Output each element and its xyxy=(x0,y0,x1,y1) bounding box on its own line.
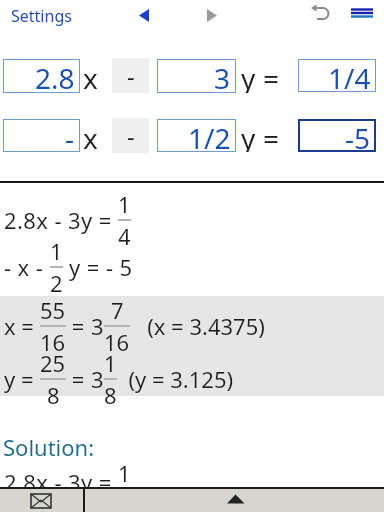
staticText: 1 xyxy=(50,236,63,266)
staticText: 3 xyxy=(91,311,104,341)
button[interactable] xyxy=(308,2,334,26)
staticText: Settings xyxy=(11,5,72,27)
staticText: y = xyxy=(4,364,40,394)
staticText: - xyxy=(65,119,75,152)
staticText: - xyxy=(127,119,135,152)
button[interactable]: - xyxy=(3,119,80,152)
staticText: 3 xyxy=(91,364,104,394)
staticText: 2.8x - 3y = xyxy=(4,467,118,497)
staticText: - x - xyxy=(4,252,50,282)
staticText: - xyxy=(127,59,135,92)
button[interactable]: -5 xyxy=(298,119,376,152)
staticText: 1 xyxy=(118,458,131,488)
button[interactable]: - xyxy=(112,58,149,93)
staticText: = xyxy=(66,311,91,341)
staticText: 1 xyxy=(118,189,131,219)
staticText: 16 xyxy=(40,327,66,357)
staticText: 1 xyxy=(104,348,117,378)
staticText: x = xyxy=(4,311,40,341)
button[interactable]: 2.8 xyxy=(3,59,80,93)
staticText: 3 xyxy=(214,59,231,93)
button[interactable]: - xyxy=(112,118,149,153)
button[interactable] xyxy=(132,6,156,26)
button[interactable]: Settings xyxy=(6,2,76,30)
staticText: 8 xyxy=(104,380,117,410)
button[interactable]: 1/4 xyxy=(298,59,376,92)
button[interactable] xyxy=(200,6,224,26)
staticText: y = - 5 xyxy=(63,252,133,282)
staticText: (x = 3.4375) xyxy=(130,311,265,341)
staticText: 2.8x - 3y = xyxy=(4,205,118,235)
staticText: = xyxy=(263,59,280,93)
staticText: x xyxy=(83,59,98,93)
staticText: = xyxy=(263,119,280,152)
staticText: x xyxy=(83,119,98,152)
staticText: -5 xyxy=(345,119,371,152)
staticText: 25 xyxy=(40,348,66,378)
staticText: 16 xyxy=(104,327,130,357)
button[interactable] xyxy=(25,490,57,512)
staticText: 8 xyxy=(47,380,60,410)
staticText: y xyxy=(241,119,256,152)
staticText: 1/2 xyxy=(188,119,231,152)
button[interactable]: 1/2 xyxy=(157,119,236,152)
button[interactable] xyxy=(346,4,378,24)
staticText: 1/4 xyxy=(328,59,371,92)
staticText: 2.8 xyxy=(35,59,75,93)
staticText: = xyxy=(66,364,91,394)
button[interactable] xyxy=(215,490,255,512)
staticText: y xyxy=(241,59,256,93)
staticText: 7 xyxy=(111,295,124,325)
staticText: 4 xyxy=(118,221,131,251)
staticText: 55 xyxy=(40,295,66,325)
button[interactable]: 3 xyxy=(157,59,236,93)
staticText: Solution: xyxy=(3,432,95,462)
staticText: 2 xyxy=(50,268,63,298)
staticText: (y = 3.125) xyxy=(117,364,234,394)
